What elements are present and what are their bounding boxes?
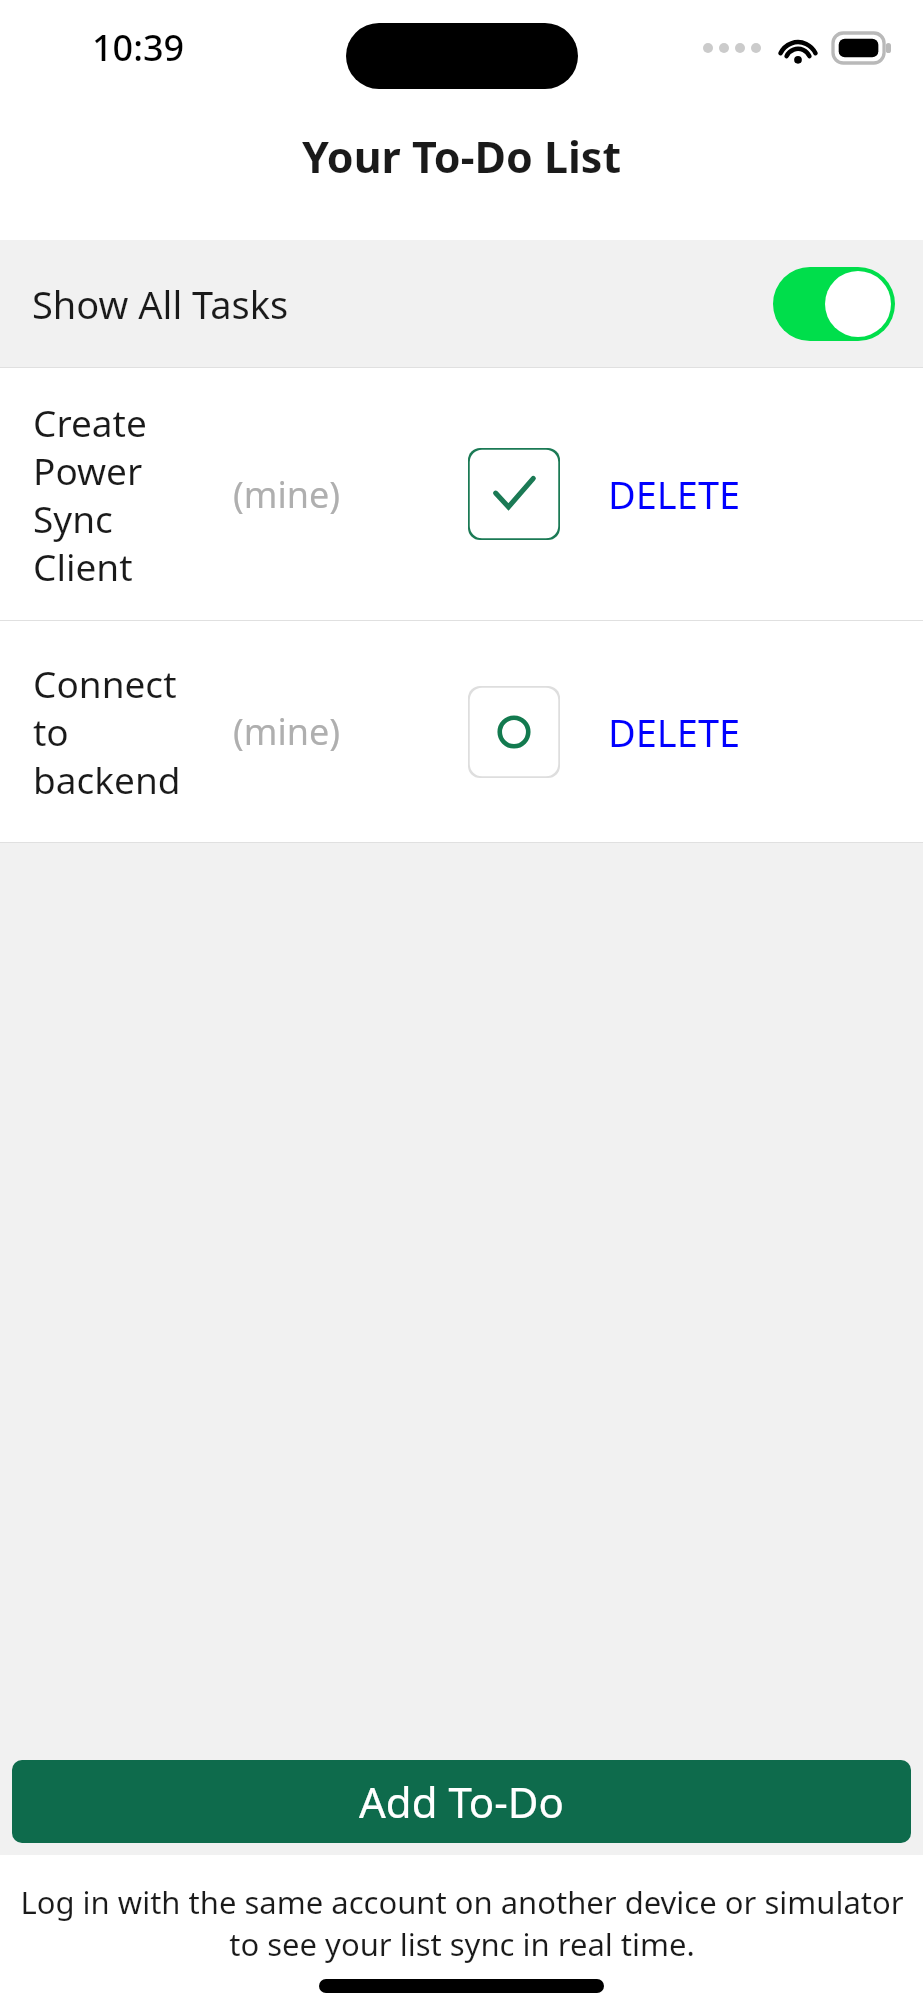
staticText: Your To-Do List bbox=[302, 127, 622, 186]
button[interactable]: Mark complete bbox=[468, 686, 560, 778]
button[interactable]: Add To-Do bbox=[12, 1760, 911, 1843]
staticText: 10:39 bbox=[92, 23, 185, 72]
button[interactable]: Show All Tasks bbox=[0, 240, 923, 368]
button[interactable]: Show all tasks toggle bbox=[773, 267, 895, 341]
button[interactable]: Connect to backend bbox=[0, 621, 923, 842]
staticText: DELETE bbox=[608, 706, 741, 758]
button[interactable]: DELETE bbox=[608, 458, 741, 530]
staticText: Show All Tasks bbox=[32, 278, 289, 330]
staticText: Log in with the same account on another … bbox=[20, 1881, 904, 1965]
staticText: (mine) bbox=[233, 470, 468, 519]
staticText: Connect to backend bbox=[33, 658, 233, 805]
button[interactable]: Mark incomplete bbox=[468, 448, 560, 540]
staticText: Add To-Do bbox=[359, 1773, 564, 1830]
staticText: Create Power Sync Client bbox=[33, 397, 233, 592]
staticText: DELETE bbox=[608, 468, 741, 520]
button[interactable]: Create Power Sync Client bbox=[0, 368, 923, 620]
staticText: (mine) bbox=[233, 707, 468, 756]
button[interactable]: DELETE bbox=[608, 696, 741, 768]
